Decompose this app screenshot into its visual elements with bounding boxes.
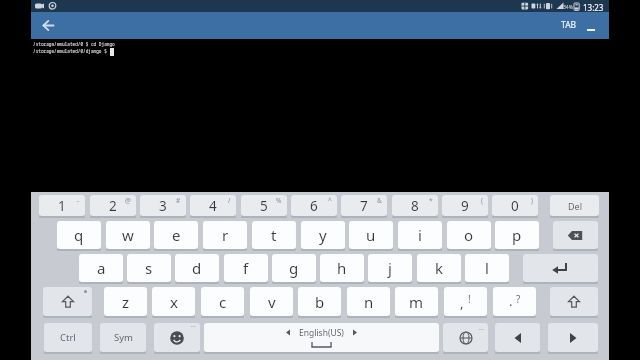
button[interactable]: ... — [154, 323, 200, 352]
staticText: h — [337, 258, 347, 278]
button[interactable]: b — [298, 287, 341, 316]
button[interactable]: g — [272, 254, 316, 282]
button[interactable]: u — [349, 221, 393, 249]
staticText: /storage/emulated/0/django $ — [33, 48, 107, 54]
button[interactable]: 9 — [442, 195, 488, 216]
staticText: l — [485, 258, 489, 278]
button[interactable] — [38, 15, 59, 36]
button[interactable]: s — [127, 254, 171, 282]
button[interactable]: p — [495, 221, 539, 249]
staticText: @ — [125, 196, 131, 205]
staticText: ( — [481, 196, 483, 205]
button[interactable]: e — [154, 221, 198, 249]
button[interactable]: z — [104, 287, 147, 316]
button[interactable]: Sym — [100, 323, 146, 352]
button[interactable]: Del — [550, 195, 599, 216]
staticText: # — [176, 196, 181, 205]
button[interactable]: x — [152, 287, 195, 316]
button[interactable]: 3 — [140, 195, 186, 216]
staticText: 13:23 — [583, 2, 604, 13]
button[interactable]: o — [447, 221, 491, 249]
button[interactable]: 6 — [291, 195, 337, 216]
staticText: e — [172, 225, 181, 245]
staticText: ) — [531, 196, 533, 205]
button[interactable]: ... — [443, 323, 488, 352]
button[interactable]: 2 — [90, 195, 136, 216]
button[interactable]: TAB — [556, 17, 582, 33]
staticText: v — [268, 292, 276, 312]
staticText: 0 — [511, 197, 519, 215]
staticText: ... — [479, 324, 484, 332]
button[interactable]: 1 — [39, 195, 85, 216]
staticText: 34% — [563, 4, 573, 11]
button[interactable]: t — [252, 221, 296, 249]
staticText: p — [512, 225, 522, 245]
staticText: s — [145, 258, 153, 278]
staticText: Del — [568, 200, 582, 212]
button[interactable] — [548, 323, 598, 352]
button[interactable]: Ctrl — [44, 323, 92, 352]
button[interactable]: q — [57, 221, 101, 249]
button[interactable]: l — [465, 254, 509, 282]
button[interactable] — [523, 254, 598, 282]
button[interactable]: r — [203, 221, 247, 249]
button[interactable]: d — [175, 254, 219, 282]
button[interactable]: k — [417, 254, 461, 282]
staticText: w — [122, 225, 134, 245]
button[interactable]: h — [320, 254, 364, 282]
staticText: * — [429, 196, 433, 205]
button[interactable]: f — [224, 254, 268, 282]
staticText: g — [289, 258, 299, 278]
staticText: 1 — [58, 197, 66, 215]
staticText: a — [97, 258, 106, 278]
button[interactable]: n — [347, 287, 390, 316]
button[interactable]: English(US) — [204, 323, 439, 352]
staticText: 3 — [159, 197, 167, 215]
button[interactable]: v — [250, 287, 293, 316]
staticText: o — [464, 225, 474, 245]
staticText: 9 — [461, 197, 469, 215]
staticText: - — [77, 196, 80, 205]
staticText: q — [74, 225, 84, 245]
button[interactable]: m — [395, 287, 438, 316]
button[interactable]: . — [493, 287, 536, 316]
staticText: x — [170, 292, 178, 312]
button[interactable]: 8 — [392, 195, 438, 216]
staticText: . — [509, 292, 513, 310]
button[interactable]: 5 — [241, 195, 287, 216]
staticText: ^ — [328, 196, 332, 205]
staticText: Sym — [114, 331, 133, 344]
button[interactable]: i — [398, 221, 442, 249]
staticText: , — [460, 294, 464, 312]
staticText: m — [409, 292, 424, 312]
staticText: j — [388, 258, 392, 278]
button[interactable]: 0 — [492, 195, 538, 216]
button[interactable]: a — [79, 254, 123, 282]
button[interactable]: y — [301, 221, 345, 249]
button[interactable]: j — [368, 254, 412, 282]
button[interactable] — [586, 20, 600, 34]
button[interactable] — [553, 221, 598, 249]
staticText: /storage/emulated/0 $ cd Django — [33, 41, 115, 47]
staticText: b — [315, 292, 325, 312]
staticText: 7 — [360, 197, 368, 215]
staticText: English(US) — [299, 327, 344, 339]
button[interactable]: 4 — [190, 195, 236, 216]
staticText: Ctrl — [60, 331, 76, 344]
button[interactable]: 7 — [341, 195, 387, 216]
staticText: d — [192, 258, 202, 278]
button[interactable]: c — [201, 287, 244, 316]
staticText: % — [276, 196, 282, 205]
staticText: / — [228, 196, 231, 205]
button[interactable]: w — [106, 221, 150, 249]
staticText: 8 — [411, 197, 419, 215]
button[interactable] — [550, 287, 598, 316]
button[interactable] — [495, 323, 540, 352]
staticText: c — [219, 292, 227, 312]
button[interactable]: , — [444, 287, 487, 316]
staticText: ! — [468, 292, 471, 306]
staticText: n — [364, 292, 374, 312]
staticText: u — [366, 225, 376, 245]
button[interactable] — [43, 287, 92, 316]
staticText: t — [271, 225, 277, 245]
